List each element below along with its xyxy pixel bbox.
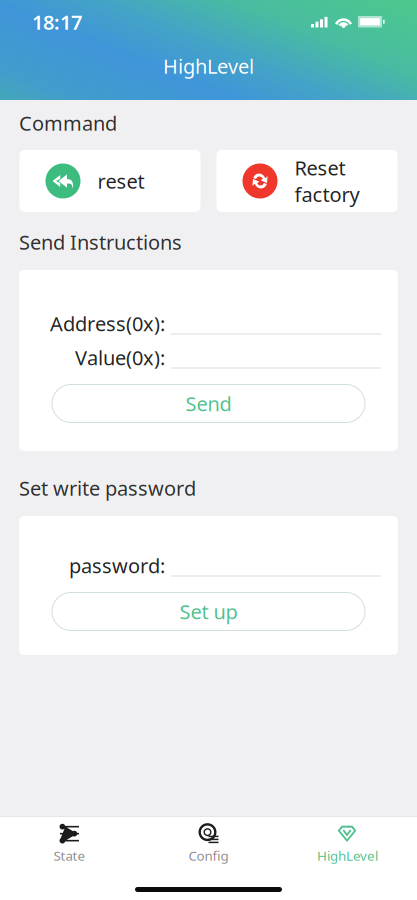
button[interactable]: State xyxy=(0,817,139,866)
staticText: Set write password xyxy=(19,475,196,501)
staticText: Value(0x): xyxy=(75,344,165,371)
staticText: Set up xyxy=(179,598,237,625)
staticText: HighLevel xyxy=(163,53,254,79)
staticText: Address(0x): xyxy=(50,310,165,337)
button[interactable]: Set up xyxy=(52,592,365,630)
staticText: reset xyxy=(97,168,144,194)
staticText: Send Instructions xyxy=(19,229,182,255)
staticText: password: xyxy=(69,552,165,579)
staticText: HighLevel xyxy=(317,847,378,864)
staticText: Send xyxy=(185,390,231,417)
staticText: Config xyxy=(188,847,228,864)
staticText: Command xyxy=(19,110,117,136)
button[interactable]: reset xyxy=(19,150,200,212)
staticText: Reset factory xyxy=(294,154,359,207)
button[interactable]: Send xyxy=(52,384,365,422)
staticText: 18:17 xyxy=(32,9,82,35)
button[interactable]: Reset factory xyxy=(216,150,397,212)
button[interactable]: Config xyxy=(139,817,278,866)
staticText: State xyxy=(53,847,85,864)
button[interactable]: HighLevel xyxy=(278,817,417,866)
